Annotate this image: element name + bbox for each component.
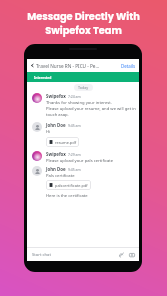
staticText: Please upload your pals certificate xyxy=(46,158,114,164)
button[interactable]: Start chat xyxy=(27,248,139,261)
staticText: Message Directly With xyxy=(27,10,140,24)
staticText: touch asap. xyxy=(46,112,69,118)
button[interactable]: Interested xyxy=(27,72,139,82)
staticText: 9:45 am xyxy=(68,123,81,128)
staticText: Start chat xyxy=(32,252,51,258)
button[interactable]: Back xyxy=(27,59,139,72)
staticText: Thanks for showing your interest. xyxy=(46,100,112,106)
button[interactable]: Attach file xyxy=(118,251,126,259)
button[interactable]: Send photo xyxy=(128,251,136,259)
staticText: Swipefox Team xyxy=(45,24,122,38)
staticText: Swipefox xyxy=(46,93,66,99)
staticText: palscertificate.pdf xyxy=(55,183,88,188)
button[interactable]: John Doe xyxy=(27,166,139,179)
staticText: Interested xyxy=(34,75,52,79)
button[interactable]: Swipefox xyxy=(27,93,139,118)
staticText: John Doe xyxy=(46,166,66,172)
staticText: Hi xyxy=(46,129,51,135)
staticText: Pals certificate xyxy=(46,173,75,179)
staticText: 7:24 am xyxy=(68,94,81,99)
staticText: Here is the certificate xyxy=(46,193,88,199)
staticText: Travel Nurse RN - PICU - Pe... xyxy=(36,63,100,69)
staticText: Today xyxy=(78,85,89,90)
button[interactable]: John Doe xyxy=(27,122,139,135)
staticText: resume.pdf xyxy=(55,140,76,145)
other: Back xyxy=(30,63,35,68)
button[interactable]: Swipefox xyxy=(27,151,139,164)
staticText: 9:45 am xyxy=(68,167,81,172)
button[interactable]: Details xyxy=(121,63,136,69)
staticText: Please upload your resume, and we will g… xyxy=(46,106,136,112)
staticText: John Doe xyxy=(46,122,66,128)
button[interactable]: palscertificate.pdf xyxy=(46,180,91,190)
button[interactable]: resume.pdf xyxy=(46,137,79,147)
staticText: Swipefox xyxy=(46,151,66,157)
staticText: 7:29 am xyxy=(68,152,81,157)
